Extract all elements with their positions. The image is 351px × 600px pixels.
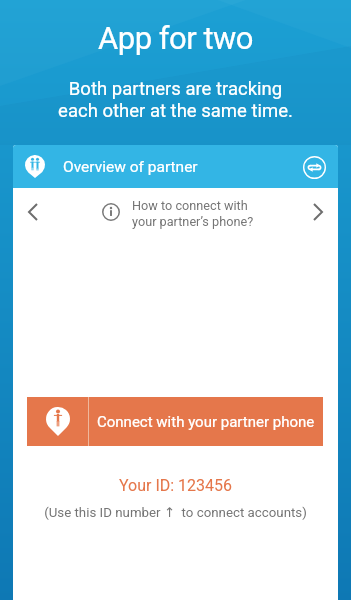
staticText: Your ID: 123456 <box>13 476 338 495</box>
button[interactable]: Switch partner <box>295 148 333 186</box>
staticText: Both partners are tracking each other at… <box>0 78 351 122</box>
button[interactable]: Overview of partner <box>13 145 338 188</box>
staticText: App for two <box>0 20 351 56</box>
button[interactable]: Connect with your partner phone <box>27 397 323 446</box>
staticText: How to connect with your partner’s phone… <box>132 198 254 229</box>
staticText: Connect with your partner phone <box>97 413 315 431</box>
button[interactable]: Next page <box>298 194 338 234</box>
staticText: Overview of partner <box>63 158 198 176</box>
button[interactable]: How to connect with your partner’s phone… <box>102 196 254 227</box>
staticText: (Use this ID number ↑ to connect account… <box>13 505 338 521</box>
button[interactable]: Previous page <box>13 194 53 234</box>
